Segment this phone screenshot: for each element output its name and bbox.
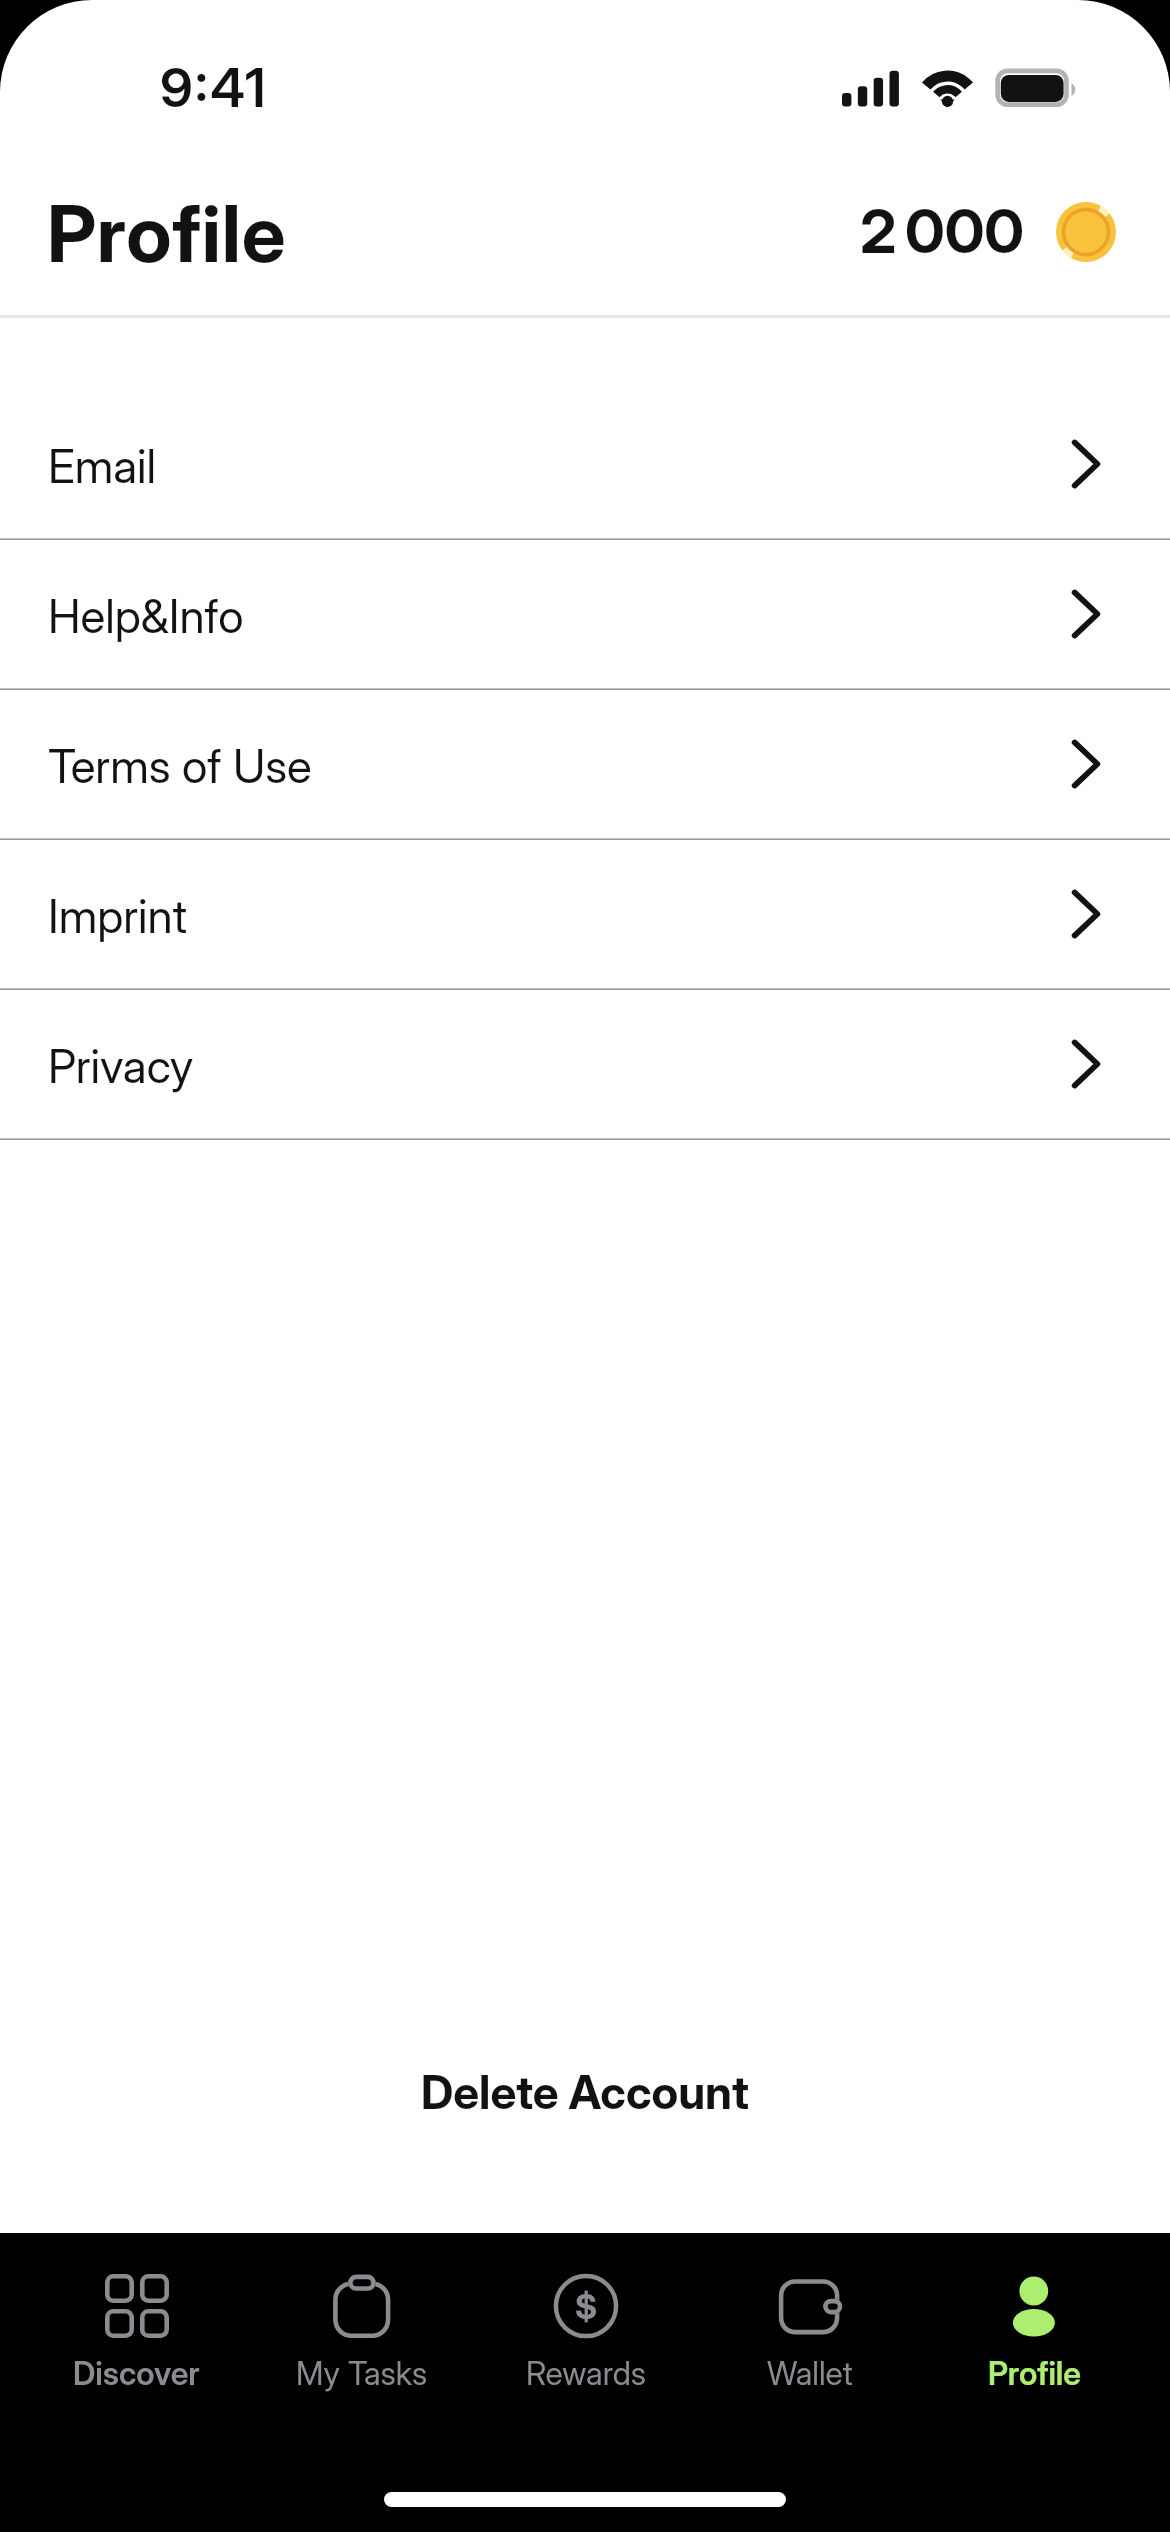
button[interactable]: Help&Info [0,539,1170,689]
staticText: Delete Account [421,2064,749,2120]
button[interactable]: 2 [840,180,1122,284]
button[interactable]: Discover [24,2233,249,2532]
staticText: Help&Info [48,588,244,644]
staticText: My Tasks [296,2354,428,2393]
staticText: 2 [860,194,897,268]
button[interactable]: Email [0,389,1170,539]
button[interactable]: Terms of Use [0,689,1170,839]
button[interactable]: Delete Account [0,2049,1170,2135]
staticText: Profile [988,2354,1081,2393]
button[interactable]: My Tasks [249,2233,474,2532]
staticText: Rewards [526,2354,646,2393]
staticText: 9:41 [160,55,268,120]
button[interactable]: Privacy [0,989,1170,1139]
button[interactable]: Rewards [474,2233,698,2532]
button[interactable]: Profile [922,2233,1146,2532]
staticText: Email [48,438,157,494]
staticText: Discover [73,2354,200,2393]
staticText: Privacy [48,1038,194,1094]
button[interactable]: Imprint [0,839,1170,989]
button[interactable]: Wallet [698,2233,922,2532]
staticText: 000 [905,194,1025,268]
staticText: Terms of Use [48,738,312,794]
staticText: Imprint [48,888,188,944]
staticText: Wallet [767,2354,853,2393]
staticText: Profile [47,186,287,280]
staticText: $ [575,2286,598,2327]
